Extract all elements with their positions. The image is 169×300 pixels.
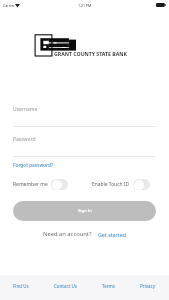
staticText: Contact Us xyxy=(54,283,77,289)
button[interactable]: Get started xyxy=(98,231,126,238)
staticText: Sign In xyxy=(78,208,92,214)
staticText: Terms xyxy=(102,283,115,289)
staticText: Username xyxy=(13,106,38,113)
button[interactable]: Enable Touch ID xyxy=(92,179,150,190)
staticText: GRANT COUNTY STATE BANK xyxy=(54,50,128,57)
staticText: Remember me xyxy=(13,181,48,188)
staticText: Forgot password? xyxy=(13,162,53,169)
staticText: Privacy xyxy=(140,283,156,289)
staticText: Need an account? xyxy=(43,230,92,238)
staticText: Find Us xyxy=(13,283,29,289)
staticText: Enable Touch ID xyxy=(92,181,130,188)
button[interactable]: Remember me xyxy=(13,179,68,190)
button[interactable]: Forgot password? xyxy=(13,162,53,169)
staticText: Carrier xyxy=(3,3,15,8)
button[interactable]: Sign In xyxy=(13,201,156,221)
button[interactable]: Contact Us xyxy=(54,275,77,297)
staticText: Password xyxy=(13,136,36,143)
button[interactable]: Privacy xyxy=(140,275,156,297)
button[interactable]: Toggle xyxy=(51,179,68,190)
staticText: Get started xyxy=(98,231,126,238)
button[interactable]: Toggle xyxy=(133,179,150,190)
staticText: 1:21 PM xyxy=(78,3,92,8)
button[interactable]: Terms xyxy=(102,275,115,297)
button[interactable]: Find Us xyxy=(13,275,29,297)
